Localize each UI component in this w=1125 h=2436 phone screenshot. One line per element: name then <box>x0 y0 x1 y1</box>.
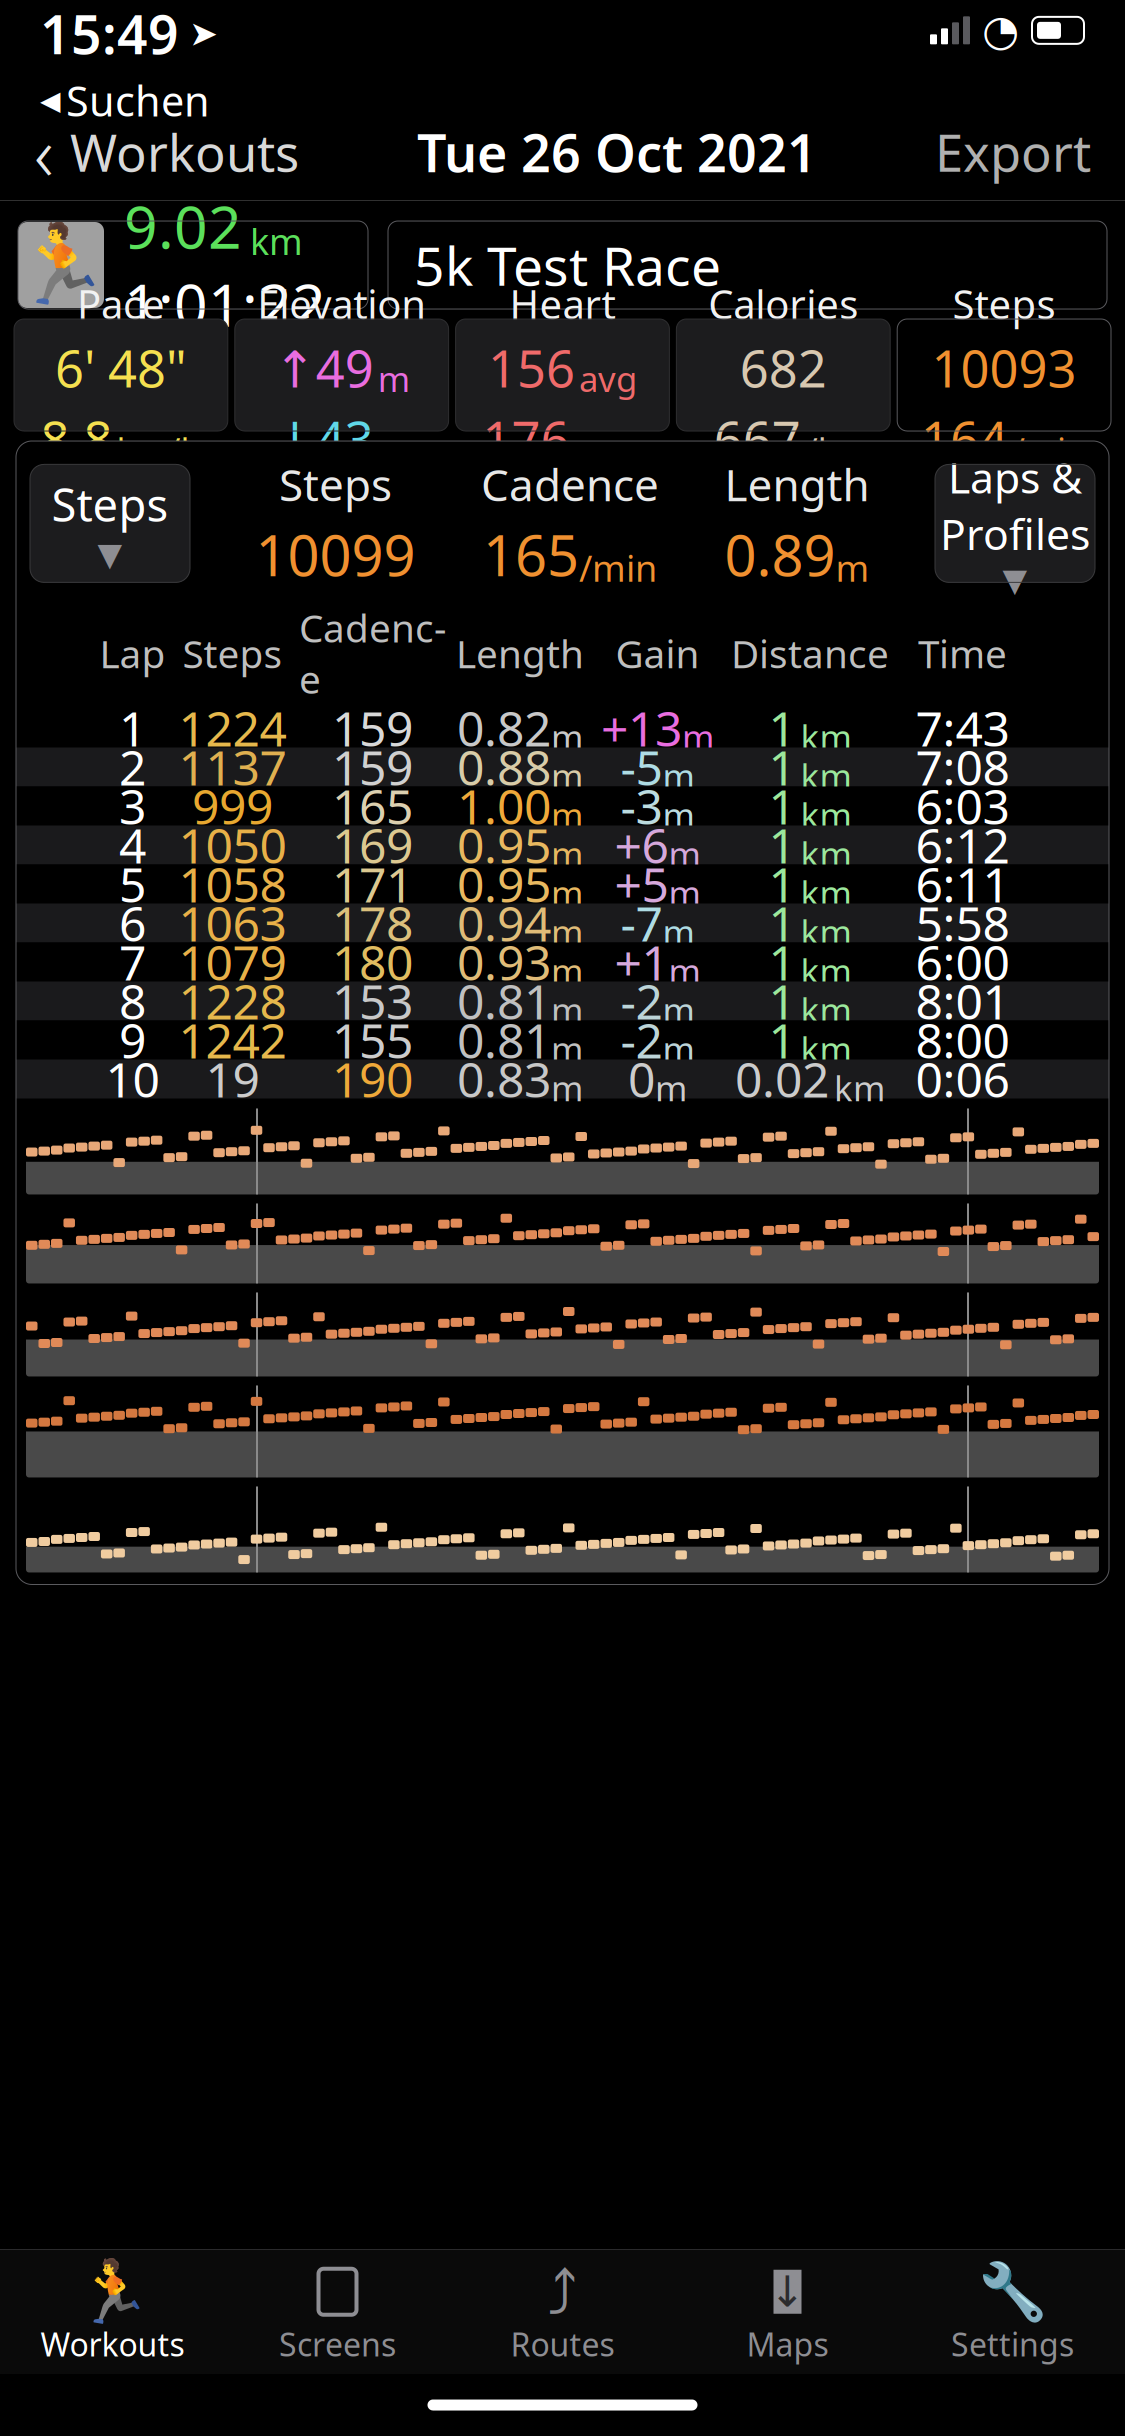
button[interactable]: ‹ <box>12 90 321 214</box>
staticText: Cadence <box>299 602 446 704</box>
staticText: m <box>551 1026 583 1072</box>
staticText: 10093 <box>932 334 1077 402</box>
staticText: km <box>800 753 851 799</box>
staticText: +1 <box>614 930 668 994</box>
staticText: Elevation <box>257 277 426 330</box>
staticText: Time <box>918 627 1007 679</box>
staticText: m <box>551 831 583 877</box>
staticText: Distance <box>731 627 889 679</box>
staticText: Calories <box>708 277 858 330</box>
button[interactable]: 5 <box>16 864 1109 903</box>
staticText: ↑49 <box>274 334 374 402</box>
staticText: 1 <box>119 696 146 760</box>
staticText: 1.00 <box>457 774 551 838</box>
staticText: m <box>682 714 714 760</box>
staticText: km <box>250 217 303 265</box>
staticText: Suchen <box>66 73 210 128</box>
button[interactable]: 5k Test Race <box>388 221 1107 309</box>
staticText: 1224 <box>178 696 286 760</box>
button[interactable]: 🔧 <box>900 2259 1125 2365</box>
staticText: 8 <box>119 969 146 1033</box>
staticText: 190 <box>332 1047 413 1111</box>
button[interactable]: 1 <box>16 708 1109 747</box>
staticText: -7 <box>620 891 662 955</box>
staticText: 178 <box>332 891 413 955</box>
staticText: km <box>834 1065 885 1111</box>
staticText: km <box>800 909 851 955</box>
staticText: 1050 <box>178 813 286 877</box>
button[interactable]: 🏃 <box>0 2259 225 2365</box>
staticText: 0.02 <box>735 1047 829 1111</box>
staticText: m <box>668 948 700 994</box>
staticText: 180 <box>332 930 413 994</box>
button[interactable]: 6 <box>16 903 1109 942</box>
staticText: m <box>378 355 410 401</box>
staticText: Settings <box>951 2323 1074 2365</box>
staticText: 1 <box>768 813 795 877</box>
staticText: Steps <box>953 277 1056 330</box>
staticText: 8:00 <box>915 1008 1009 1072</box>
staticText: 7:43 <box>915 696 1009 760</box>
button[interactable]: 9 <box>16 1020 1109 1059</box>
staticText: 8:01 <box>915 969 1009 1033</box>
staticText: 5k Test Race <box>414 230 721 300</box>
staticText: 1242 <box>178 1008 286 1072</box>
staticText: m <box>662 909 694 955</box>
button[interactable]: 8 <box>16 981 1109 1020</box>
staticText: 6' 48" <box>55 334 187 402</box>
staticText: 1:01:22 <box>124 265 326 343</box>
staticText: Steps <box>182 627 282 679</box>
staticText: 0.88 <box>457 735 551 799</box>
button[interactable]: ⤴ <box>450 2259 675 2365</box>
button[interactable]: ↓ <box>675 2259 900 2365</box>
staticText: ◔ <box>982 6 1019 54</box>
staticText: km <box>800 714 851 760</box>
staticText: 3 <box>119 774 146 838</box>
staticText: 10 <box>105 1047 159 1111</box>
staticText: 999 <box>192 774 273 838</box>
staticText: 1 <box>768 774 795 838</box>
staticText: Routes <box>510 2323 614 2365</box>
staticText: /min <box>1012 427 1087 473</box>
staticText: ◀ <box>40 85 61 116</box>
staticText: +5 <box>614 852 668 916</box>
button[interactable]: 2 <box>16 747 1109 786</box>
staticText: m <box>378 427 410 473</box>
staticText: m <box>662 792 694 838</box>
button[interactable]: Export <box>913 106 1113 198</box>
button[interactable]: 3 <box>16 786 1109 825</box>
staticText: 0.82 <box>457 696 551 760</box>
staticText: 0.93 <box>457 930 551 994</box>
button[interactable]: Steps <box>30 464 190 582</box>
staticText: -2 <box>620 969 662 1033</box>
button[interactable]: 🏃 <box>18 221 368 309</box>
staticText: Cadence <box>481 455 659 513</box>
staticText: 4 <box>119 813 146 877</box>
staticText: 1228 <box>178 969 286 1033</box>
staticText: 159 <box>332 735 413 799</box>
staticText: m <box>551 1065 583 1111</box>
staticText: km <box>800 1026 851 1072</box>
staticText: avg <box>579 355 637 401</box>
staticText: 1063 <box>178 891 286 955</box>
staticText: 165 <box>483 517 579 592</box>
staticText: 8.8 <box>40 406 112 473</box>
staticText: 1 <box>768 891 795 955</box>
button[interactable]: Laps & <box>935 464 1095 582</box>
staticText: m <box>668 831 700 877</box>
staticText: 159 <box>332 696 413 760</box>
staticText: 1058 <box>178 852 286 916</box>
button[interactable]: 10 <box>16 1059 1109 1098</box>
button[interactable]: 4 <box>16 825 1109 864</box>
staticText: m <box>662 1026 694 1072</box>
button[interactable]: 7 <box>16 942 1109 981</box>
staticText: Steps <box>51 474 168 534</box>
staticText: 0.83 <box>457 1047 551 1111</box>
staticText: m <box>551 987 583 1033</box>
staticText: Screens <box>279 2323 396 2365</box>
staticText: 10099 <box>255 517 415 592</box>
staticText: m <box>551 948 583 994</box>
staticText: km/h <box>116 427 201 473</box>
staticText: Lap <box>99 627 165 679</box>
button[interactable]: Screens <box>225 2259 450 2365</box>
